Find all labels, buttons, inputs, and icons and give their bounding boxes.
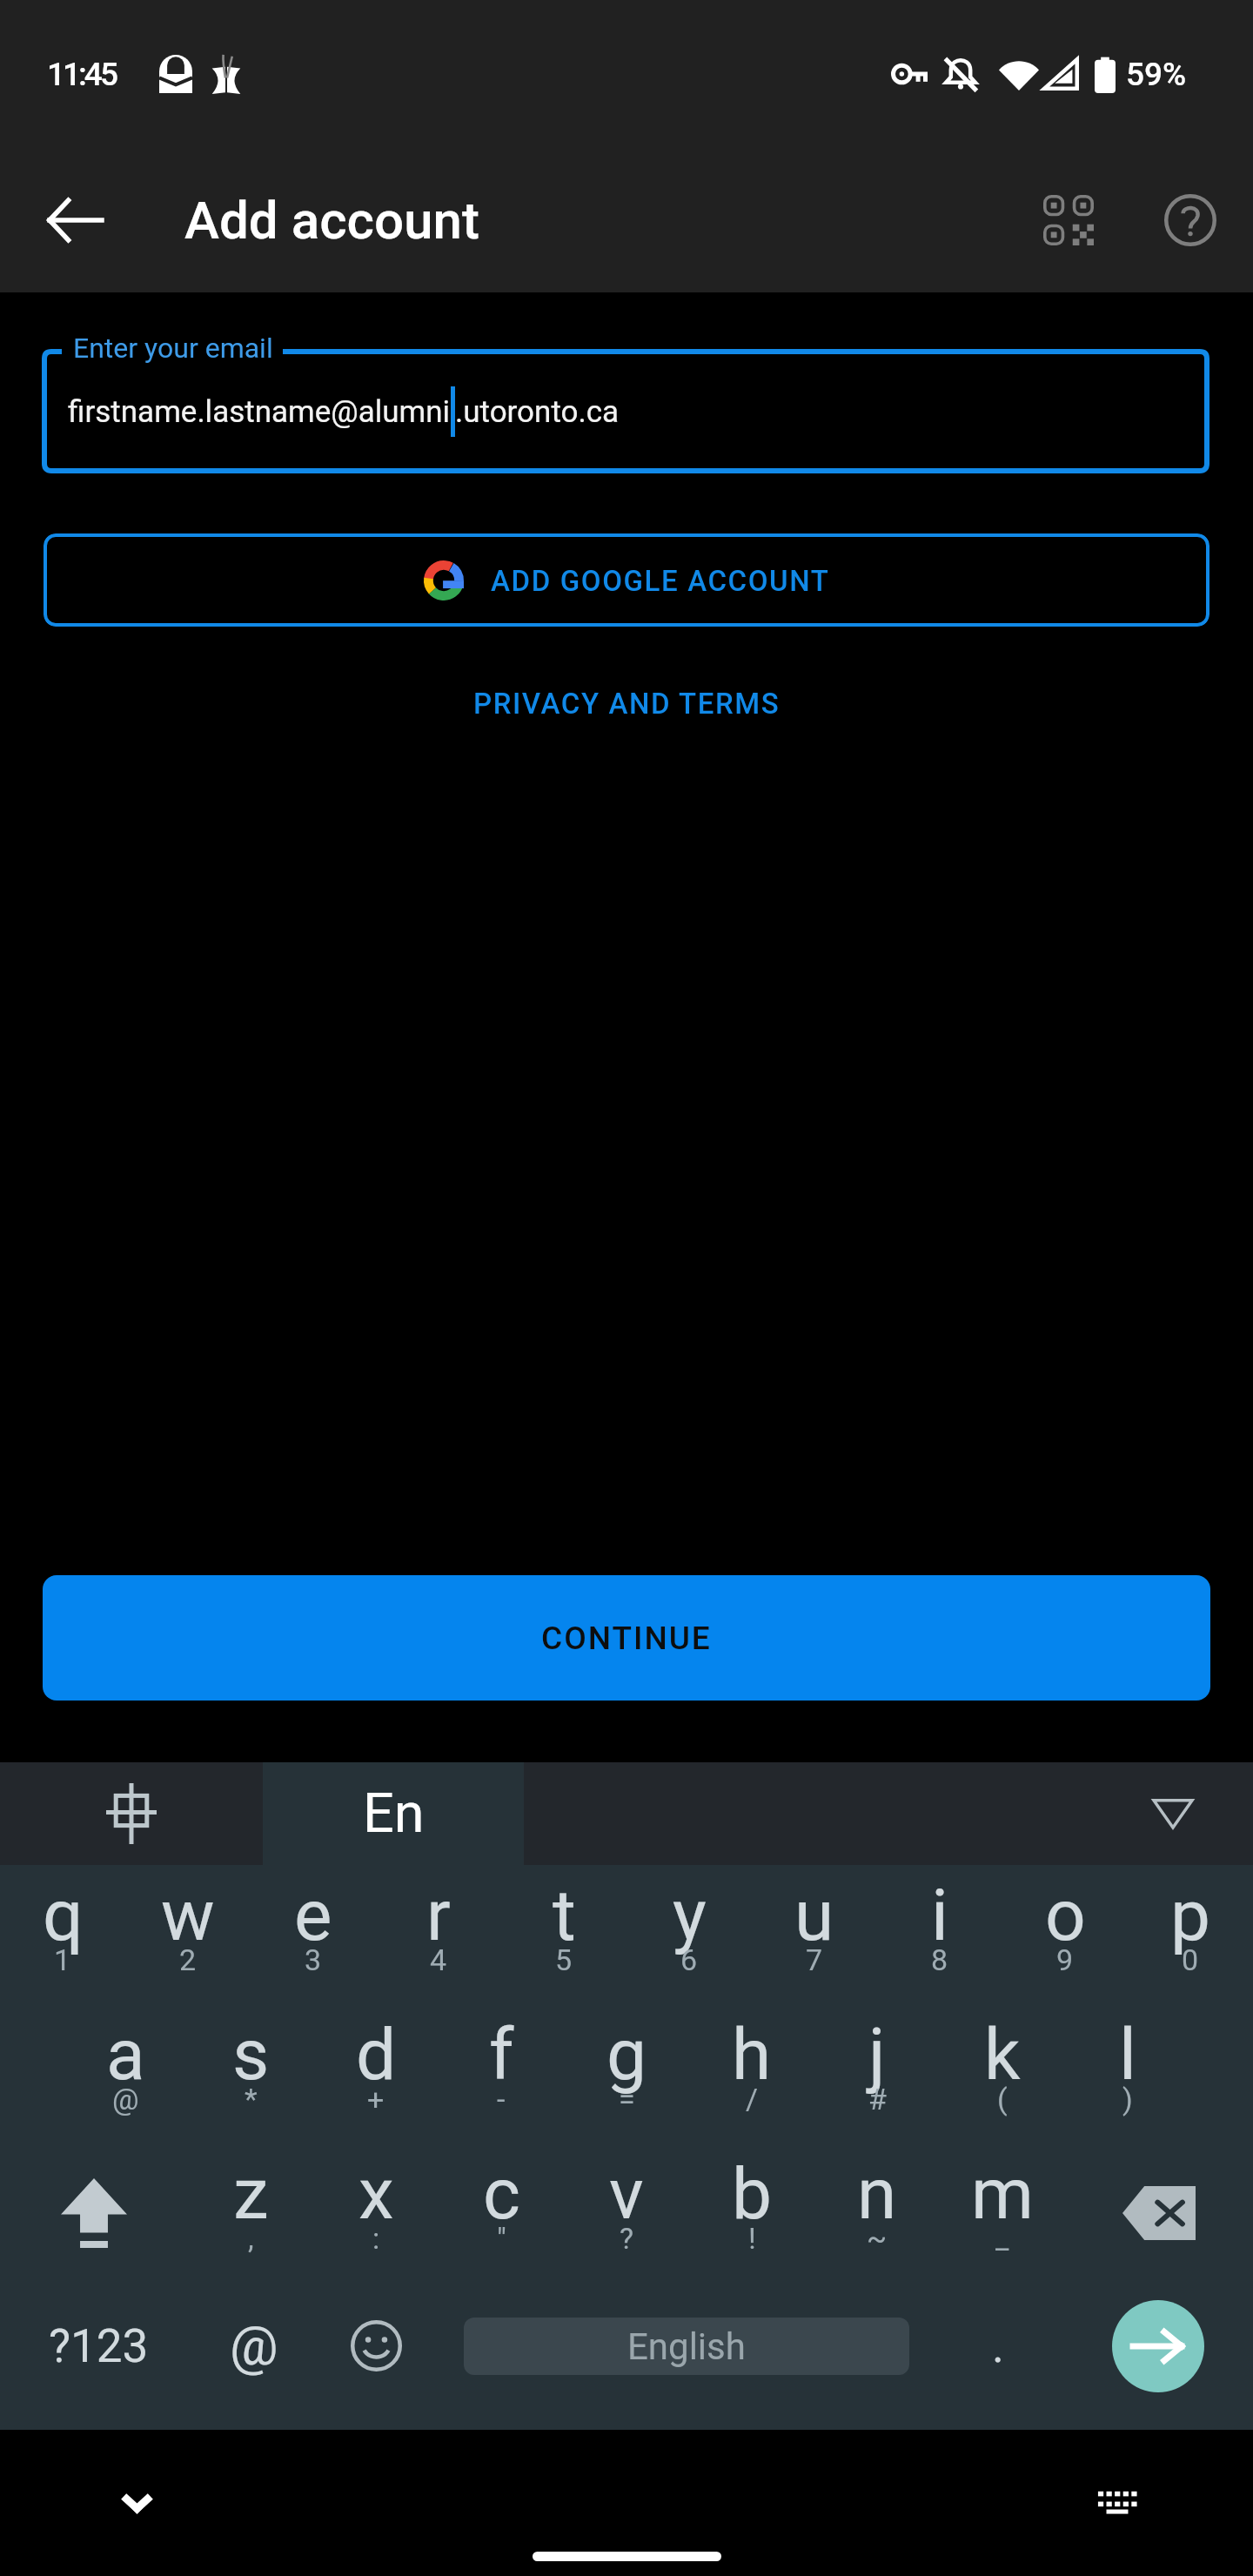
staticText: =	[619, 2082, 635, 2116]
button[interactable]: o	[1002, 1865, 1128, 2004]
staticText: #	[868, 2082, 887, 2116]
staticText: 2	[179, 1942, 197, 1977]
button[interactable]: Emoji	[312, 2272, 440, 2419]
staticText: r	[426, 1874, 451, 1957]
button[interactable]: u	[752, 1865, 877, 2004]
staticText: 9	[1056, 1942, 1074, 1977]
button[interactable]: En	[263, 1762, 524, 1865]
button[interactable]: z	[188, 2143, 313, 2283]
staticText: y	[673, 1874, 707, 1957]
staticText: q	[43, 1874, 84, 1957]
staticText: 0	[1182, 1942, 1199, 1977]
button[interactable]: Shift	[0, 2143, 188, 2283]
staticText: .	[992, 2319, 1004, 2373]
button[interactable]: Enter	[1112, 2300, 1204, 2392]
button[interactable]: c	[439, 2143, 564, 2283]
button[interactable]: Collapse keyboard	[1133, 1774, 1213, 1854]
staticText: u	[794, 1874, 834, 1957]
staticText: .utoronto.ca	[455, 394, 620, 430]
staticText: 59%	[1126, 56, 1187, 93]
button[interactable]: Chinese input	[0, 1762, 263, 1865]
button[interactable]: English	[464, 2318, 909, 2375]
staticText: f	[489, 2013, 514, 2096]
button[interactable]: Switch keyboard	[1065, 2449, 1169, 2553]
staticText: ~	[867, 2221, 888, 2256]
staticText: )	[1122, 2082, 1133, 2116]
staticText: z	[233, 2152, 269, 2236]
button[interactable]: CONTINUE	[43, 1575, 1210, 1701]
staticText: ADD GOOGLE ACCOUNT	[491, 564, 830, 598]
button[interactable]: r	[376, 1865, 501, 2004]
staticText: g	[606, 2013, 647, 2096]
button[interactable]: v	[564, 2143, 689, 2283]
button[interactable]: Scan QR code	[1015, 166, 1122, 274]
staticText: d	[356, 2013, 397, 2096]
button[interactable]: k	[940, 2004, 1065, 2143]
button[interactable]: a	[63, 2004, 188, 2143]
staticText: +	[367, 2082, 385, 2116]
button[interactable]: t	[501, 1865, 626, 2004]
staticText: l	[1119, 2013, 1136, 2096]
staticText: 4	[430, 1942, 447, 1977]
staticText: @	[112, 2082, 139, 2116]
button[interactable]: y	[626, 1865, 752, 2004]
button[interactable]: .	[933, 2272, 1063, 2419]
button[interactable]: ?123	[0, 2272, 197, 2419]
button[interactable]: f	[439, 2004, 564, 2143]
button[interactable]: w	[125, 1865, 251, 2004]
button[interactable]: Back	[21, 166, 129, 274]
button[interactable]: firstname.lastname@alumni	[42, 349, 1209, 473]
button[interactable]: Hide keyboard	[84, 2452, 189, 2556]
staticText: /	[746, 2082, 759, 2116]
staticText: v	[609, 2152, 644, 2236]
button[interactable]: x	[313, 2143, 439, 2283]
button[interactable]: h	[689, 2004, 814, 2143]
button[interactable]: e	[251, 1865, 376, 2004]
button[interactable]: p	[1128, 1865, 1253, 2004]
button[interactable]: l	[1065, 2004, 1190, 2143]
staticText: b	[732, 2152, 773, 2236]
staticText: n	[857, 2152, 897, 2236]
staticText: Add account	[184, 190, 479, 251]
staticText: En	[363, 1781, 425, 1846]
staticText: ,	[248, 2221, 254, 2256]
staticText: CONTINUE	[541, 1620, 712, 1657]
staticText: x	[358, 2152, 394, 2236]
button[interactable]: i	[877, 1865, 1002, 2004]
staticText: 7	[806, 1942, 823, 1977]
staticText: firstname.lastname@alumni	[68, 394, 451, 430]
staticText: "	[497, 2221, 506, 2256]
staticText: w	[161, 1874, 215, 1957]
button[interactable]: d	[313, 2004, 439, 2143]
staticText: i	[931, 1874, 948, 1957]
staticText: @	[230, 2314, 278, 2378]
button[interactable]: Help	[1136, 166, 1244, 274]
button[interactable]: b	[689, 2143, 814, 2283]
button[interactable]: PRIVACY AND TERMS	[447, 671, 807, 736]
staticText: e	[294, 1874, 332, 1957]
button[interactable]: g	[564, 2004, 689, 2143]
button[interactable]: @	[197, 2272, 312, 2419]
staticText: h	[732, 2013, 772, 2096]
button[interactable]: Backspace	[1065, 2143, 1253, 2283]
staticText: !	[748, 2221, 756, 2256]
staticText: (	[997, 2082, 1008, 2116]
button[interactable]: m	[940, 2143, 1065, 2283]
button[interactable]: q	[0, 1865, 125, 2004]
staticText: ?	[620, 2221, 634, 2256]
button[interactable]: ADD GOOGLE ACCOUNT	[44, 533, 1209, 627]
staticText: o	[1045, 1874, 1086, 1957]
button[interactable]: j	[814, 2004, 940, 2143]
staticText: 1	[54, 1942, 71, 1977]
button[interactable]: s	[188, 2004, 313, 2143]
staticText: 6	[680, 1942, 698, 1977]
staticText: *	[245, 2082, 258, 2116]
staticText: :	[372, 2221, 380, 2256]
staticText: m	[971, 2152, 1034, 2236]
staticText: k	[984, 2013, 1021, 2096]
staticText: j	[868, 2013, 886, 2096]
staticText: 5	[555, 1942, 573, 1977]
staticText: Enter your email	[73, 332, 273, 365]
button[interactable]: n	[814, 2143, 940, 2283]
staticText: c	[483, 2152, 520, 2236]
